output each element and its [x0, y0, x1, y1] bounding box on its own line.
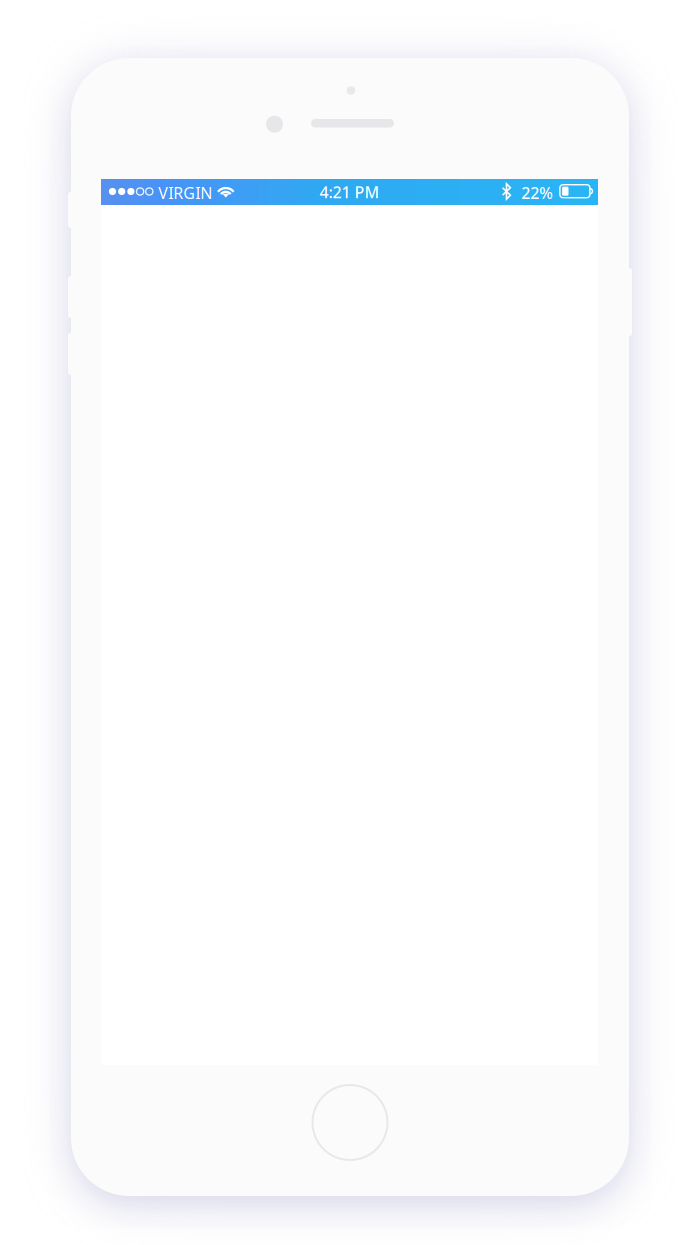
staticText: 22%: [521, 182, 553, 203]
staticText: 4:21 PM: [319, 181, 379, 203]
staticText: VIRGIN: [158, 182, 212, 203]
